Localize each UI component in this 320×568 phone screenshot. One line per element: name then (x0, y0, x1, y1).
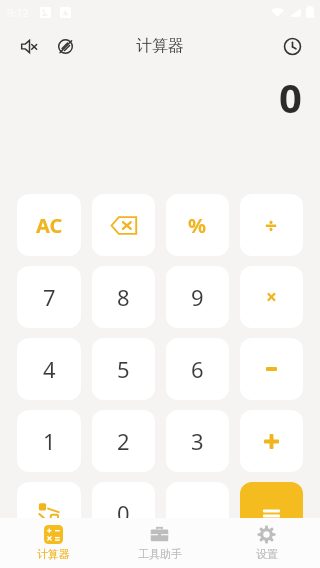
staticText: 7 (43, 282, 56, 312)
button[interactable]: 6 (166, 338, 229, 400)
staticText: 4 (43, 354, 56, 384)
staticText: 3 (191, 426, 204, 456)
button[interactable]: 8 (92, 266, 155, 328)
staticText: ÷ (265, 211, 278, 240)
staticText: 2 (117, 426, 130, 456)
staticText: % (188, 212, 207, 239)
staticText: 0 (279, 70, 302, 124)
button[interactable]: History (278, 32, 306, 60)
button[interactable]: 4 (17, 338, 81, 400)
staticText: 5 (117, 354, 130, 384)
staticText: 0 (117, 498, 130, 528)
button[interactable]: 7 (17, 266, 81, 328)
button[interactable]: Vibration off (52, 33, 78, 59)
button[interactable]: Unit converter (17, 482, 81, 544)
button[interactable]: 计算器 (0, 518, 106, 568)
button[interactable]: Sound off (16, 33, 42, 59)
staticText: 工具助手 (138, 547, 182, 561)
button[interactable]: 1 (17, 410, 81, 472)
button[interactable]: 5 (92, 338, 155, 400)
button[interactable]: 工具助手 (106, 518, 213, 568)
button[interactable]: 设置 (213, 518, 320, 568)
button[interactable]: AC (17, 194, 81, 256)
staticText: 计算器 (136, 36, 184, 56)
button[interactable]: 9 (166, 266, 229, 328)
button[interactable]: 0 (92, 482, 155, 544)
staticText: 9 (191, 282, 204, 312)
staticText: × (266, 284, 277, 310)
button[interactable]: × (240, 266, 303, 328)
button[interactable]: . (166, 482, 229, 544)
staticText: 1 (43, 426, 56, 456)
button[interactable]: Plus (240, 410, 303, 472)
button[interactable]: 3 (166, 410, 229, 472)
staticText: 计算器 (37, 547, 70, 561)
button[interactable]: 2 (92, 410, 155, 472)
button[interactable]: Delete (92, 194, 155, 256)
button[interactable]: ÷ (240, 194, 303, 256)
staticText: 设置 (256, 547, 278, 561)
staticText: 6 (191, 354, 204, 384)
button[interactable]: Minus (240, 338, 303, 400)
staticText: 8 (117, 282, 130, 312)
button[interactable]: % (166, 194, 229, 256)
button[interactable]: Equals (240, 482, 303, 544)
staticText: AC (36, 212, 63, 239)
